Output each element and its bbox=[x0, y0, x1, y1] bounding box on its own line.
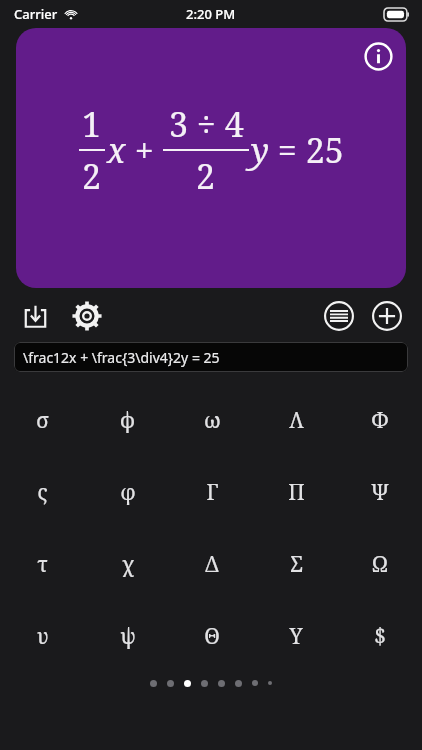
staticText: Carrier bbox=[14, 5, 58, 23]
staticText: $ bbox=[374, 622, 386, 651]
staticText: \frac12x + \frac{3\div4}2y = 25 bbox=[23, 348, 220, 367]
staticText: χ bbox=[122, 550, 134, 579]
button[interactable]: Add bbox=[368, 297, 406, 335]
staticText: 2:20 PM bbox=[186, 5, 236, 23]
button[interactable]: Φ bbox=[338, 384, 422, 456]
staticText: τ bbox=[37, 550, 48, 579]
staticText: = 25 bbox=[269, 127, 344, 173]
staticText: Ψ bbox=[371, 478, 389, 507]
staticText: Γ bbox=[206, 478, 219, 507]
staticText: ψ bbox=[120, 622, 136, 651]
staticText: x bbox=[107, 127, 126, 173]
staticText: φ bbox=[120, 478, 136, 507]
staticText: σ bbox=[36, 406, 49, 435]
staticText: Π bbox=[288, 478, 305, 507]
button[interactable]: $ bbox=[338, 600, 422, 672]
staticText: y bbox=[251, 127, 269, 173]
button[interactable]: χ bbox=[85, 528, 170, 600]
button[interactable]: Σ bbox=[254, 528, 338, 600]
button[interactable]: ω bbox=[170, 384, 254, 456]
staticText: Ω bbox=[372, 550, 388, 579]
staticText: Σ bbox=[290, 550, 303, 579]
staticText: Δ bbox=[205, 550, 219, 579]
button[interactable]: Λ bbox=[254, 384, 338, 456]
staticText: Λ bbox=[289, 406, 304, 435]
button[interactable]: ψ bbox=[85, 600, 170, 672]
staticText: 3 ÷ 4 bbox=[169, 101, 244, 147]
staticText: Υ bbox=[289, 622, 303, 651]
button[interactable]: Θ bbox=[170, 600, 254, 672]
button[interactable]: List bbox=[320, 297, 358, 335]
staticText: ω bbox=[204, 406, 221, 435]
button[interactable]: φ bbox=[85, 456, 170, 528]
button[interactable]: Υ bbox=[254, 600, 338, 672]
button[interactable]: Ω bbox=[338, 528, 422, 600]
button[interactable]: Δ bbox=[170, 528, 254, 600]
button[interactable]: ϕ bbox=[85, 384, 170, 456]
staticText: ς bbox=[37, 478, 48, 507]
button[interactable]: Π bbox=[254, 456, 338, 528]
button[interactable]: \frac12x + \frac{3\div4}2y = 25 bbox=[14, 342, 408, 372]
staticText: 2 bbox=[196, 153, 216, 199]
button[interactable]: Save bbox=[16, 297, 54, 335]
button[interactable]: Γ bbox=[170, 456, 254, 528]
button[interactable]: Info bbox=[362, 40, 394, 72]
button[interactable]: Ψ bbox=[338, 456, 422, 528]
staticText: ϕ bbox=[120, 406, 135, 435]
button[interactable]: υ bbox=[0, 600, 85, 672]
staticText: 1 bbox=[82, 101, 102, 147]
button[interactable]: σ bbox=[0, 384, 85, 456]
button[interactable]: τ bbox=[0, 528, 85, 600]
staticText: Θ bbox=[204, 622, 220, 651]
button[interactable]: Info bbox=[16, 28, 406, 288]
staticText: υ bbox=[37, 622, 49, 651]
staticText: 2 bbox=[82, 153, 102, 199]
button[interactable]: ς bbox=[0, 456, 85, 528]
staticText: + bbox=[126, 127, 163, 173]
staticText: Φ bbox=[371, 406, 389, 435]
button[interactable]: Settings bbox=[68, 297, 106, 335]
